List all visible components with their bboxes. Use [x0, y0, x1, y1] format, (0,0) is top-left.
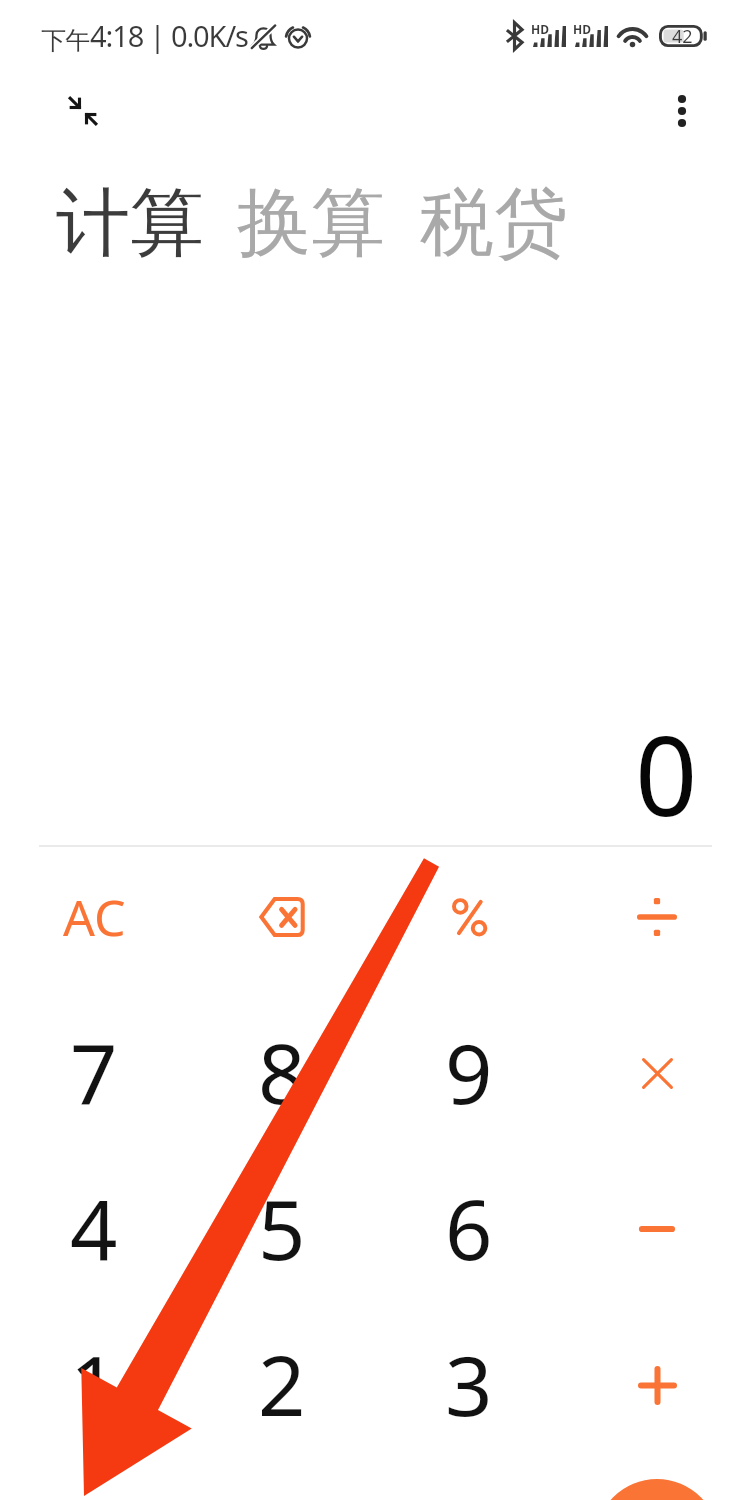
button[interactable]: 9 — [375, 995, 563, 1151]
button[interactable]: 7 — [0, 995, 188, 1151]
button[interactable]: 换算 — [237, 177, 385, 270]
staticText: AC — [63, 883, 126, 951]
staticText: 2 — [258, 1327, 306, 1440]
staticText: 0 — [635, 699, 698, 839]
button[interactable]: 税贷 — [420, 177, 568, 270]
staticText: 8 — [258, 1015, 306, 1128]
button[interactable]: Percent — [375, 839, 563, 995]
staticText: 5 — [258, 1171, 306, 1284]
button[interactable]: 3 — [375, 1307, 563, 1463]
button[interactable]: Subtract — [563, 1151, 750, 1307]
button[interactable]: 4 — [0, 1151, 188, 1307]
staticText: 6 — [445, 1171, 493, 1284]
button[interactable]: Add — [563, 1307, 750, 1463]
staticText: 42 — [672, 24, 693, 46]
button[interactable]: 计算 — [56, 177, 204, 270]
button[interactable]: 1 — [0, 1307, 188, 1463]
staticText: 1 — [70, 1327, 118, 1440]
staticText: 换算 — [237, 177, 385, 270]
button[interactable]: AC — [0, 839, 188, 995]
staticText: HD — [531, 21, 549, 37]
button[interactable]: Equals — [563, 1463, 750, 1500]
button[interactable]: . — [0, 1463, 188, 1500]
staticText: 9 — [445, 1015, 493, 1128]
button[interactable]: Divide — [563, 839, 750, 995]
staticText: 税贷 — [420, 177, 568, 270]
staticText: 下午 — [41, 25, 90, 56]
button[interactable]: Multiply — [563, 995, 750, 1151]
staticText: HD — [573, 21, 591, 37]
staticText: 7 — [70, 1015, 118, 1128]
staticText: 4 — [70, 1171, 118, 1284]
staticText: . — [83, 1483, 106, 1500]
staticText: 3 — [445, 1327, 493, 1440]
button[interactable]: 8 — [188, 995, 376, 1151]
button[interactable]: Collapse — [52, 80, 114, 142]
staticText: 4:18 | 0.0K/s — [90, 16, 248, 55]
button[interactable]: 2 — [188, 1307, 376, 1463]
button[interactable]: Delete — [188, 839, 376, 995]
button[interactable]: 5 — [188, 1151, 376, 1307]
button[interactable]: More options — [652, 80, 712, 140]
staticText: 计算 — [56, 177, 204, 270]
button[interactable]: 6 — [375, 1151, 563, 1307]
